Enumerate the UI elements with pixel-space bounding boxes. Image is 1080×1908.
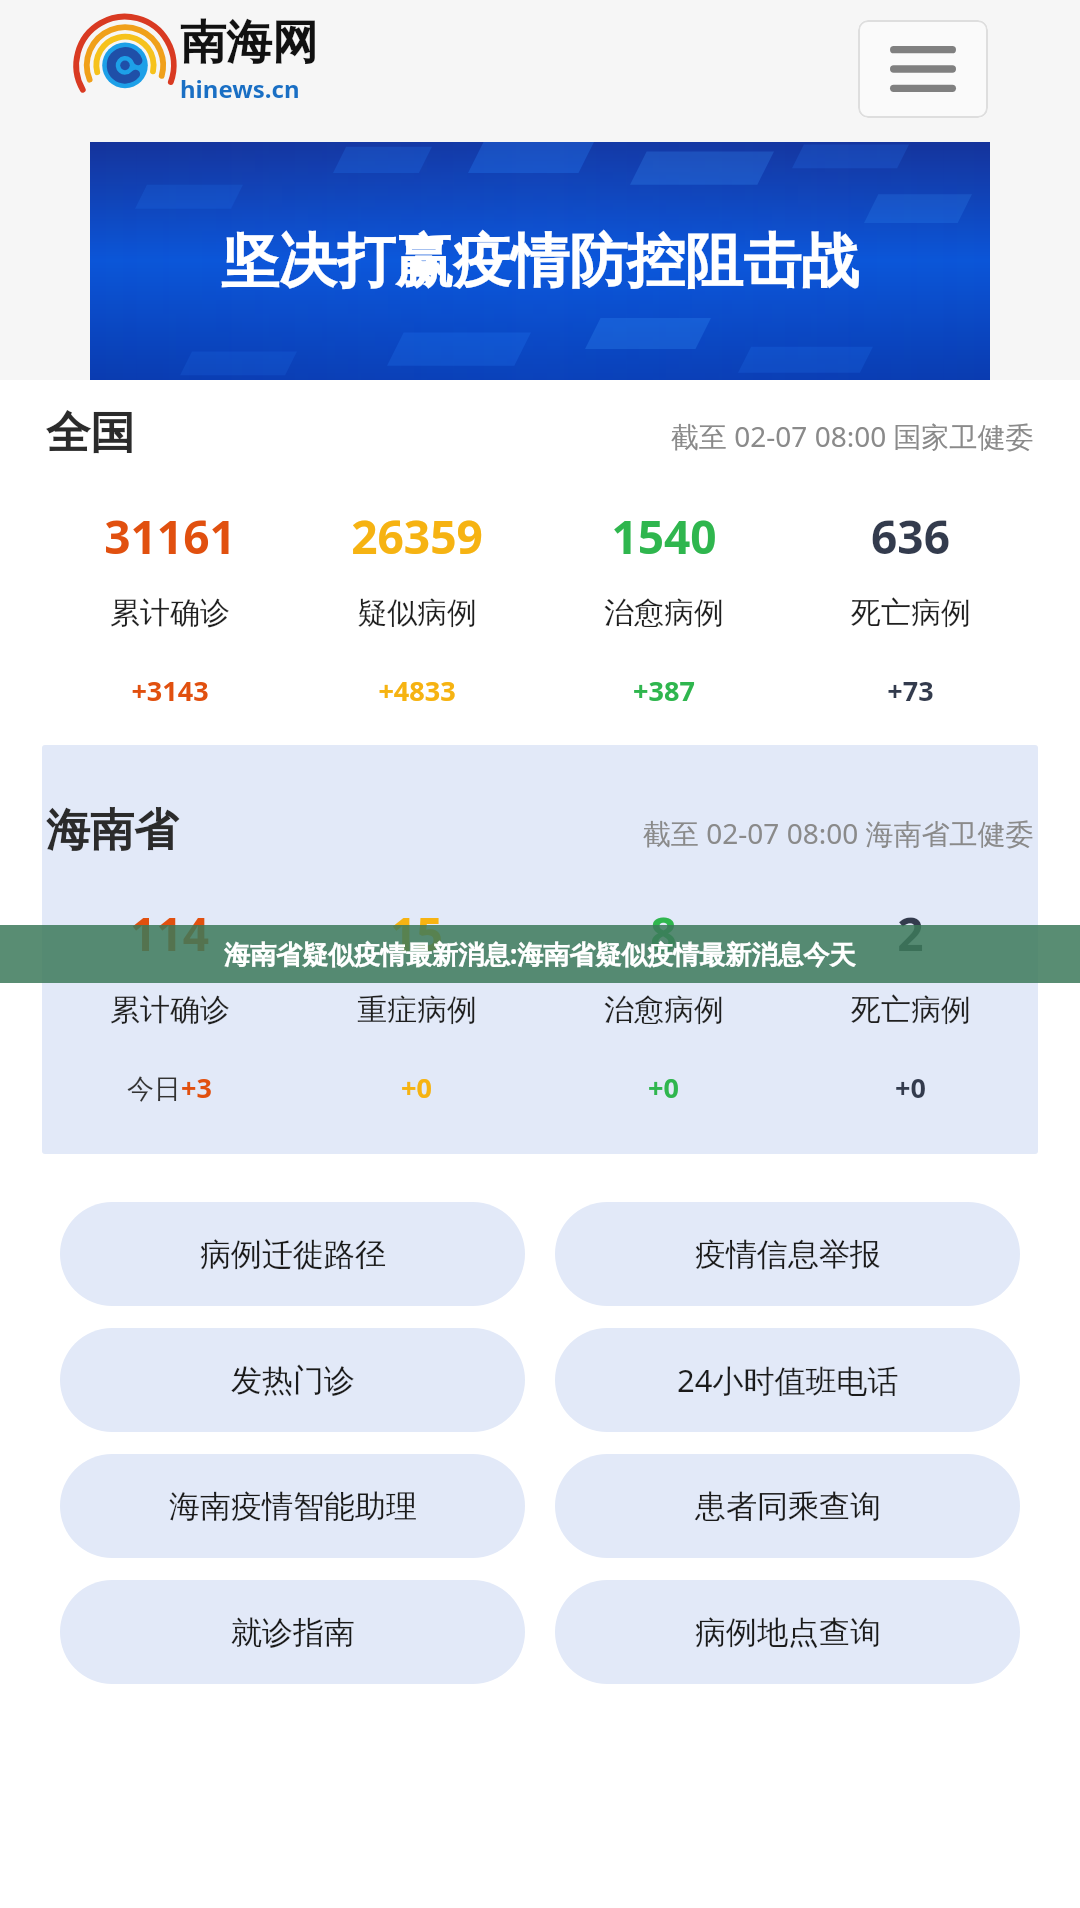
staticText: 病例迁徙路径: [200, 1235, 386, 1274]
staticText: 15: [390, 902, 443, 965]
staticText: +3143: [131, 672, 209, 709]
staticText: 全国: [46, 406, 134, 461]
staticText: 就诊指南: [231, 1613, 355, 1652]
staticText: 死亡病例: [851, 594, 971, 632]
staticText: 重症病例: [357, 991, 477, 1029]
staticText: 636: [871, 505, 950, 568]
staticText: 患者同乘查询: [695, 1487, 881, 1526]
button[interactable]: 就诊指南: [60, 1580, 525, 1684]
staticText: 疫情信息举报: [695, 1235, 881, 1274]
staticText: hinews.cn: [180, 72, 300, 105]
staticText: 海南省: [46, 803, 178, 858]
staticText: 海南省疑似疫情最新消息:海南省疑似疫情最新消息今天: [224, 936, 856, 972]
staticText: 疑似病例: [357, 594, 477, 632]
staticText: +387: [633, 672, 695, 709]
staticText: 累计确诊: [110, 594, 230, 632]
staticText: 坚决打赢疫情防控阻击战: [221, 225, 859, 298]
button[interactable]: 病例地点查询: [555, 1580, 1020, 1684]
button[interactable]: 病例迁徙路径: [60, 1202, 525, 1306]
staticText: 海南疫情智能助理: [169, 1487, 417, 1526]
button[interactable]: 24小时值班电话: [555, 1328, 1020, 1432]
staticText: 截至 02-07 08:00 国家卫健委: [671, 417, 1034, 455]
button[interactable]: 发热门诊: [60, 1328, 525, 1432]
staticText: 114: [130, 902, 209, 965]
staticText: 2: [897, 902, 924, 965]
button[interactable]: 疫情信息举报: [555, 1202, 1020, 1306]
staticText: 南海网: [180, 14, 318, 72]
staticText: 今日+3: [127, 1069, 212, 1106]
staticText: 发热门诊: [231, 1361, 355, 1400]
staticText: +0: [648, 1069, 679, 1106]
staticText: +0: [895, 1069, 926, 1106]
staticText: +0: [401, 1069, 432, 1106]
staticText: 治愈病例: [604, 991, 724, 1029]
staticText: 病例地点查询: [695, 1613, 881, 1652]
staticText: 31161: [104, 505, 236, 568]
staticText: 24小时值班电话: [677, 1359, 899, 1401]
staticText: 8: [650, 902, 677, 965]
staticText: 1540: [611, 505, 717, 568]
staticText: 截至 02-07 08:00 海南省卫健委: [643, 814, 1034, 852]
staticText: 26359: [351, 505, 483, 568]
staticText: +4833: [378, 672, 456, 709]
staticText: 累计确诊: [110, 991, 230, 1029]
button[interactable]: 海南疫情智能助理: [60, 1454, 525, 1558]
button[interactable]: Menu: [858, 20, 988, 118]
button[interactable]: 患者同乘查询: [555, 1454, 1020, 1558]
staticText: 死亡病例: [851, 991, 971, 1029]
staticText: 治愈病例: [604, 594, 724, 632]
staticText: +73: [887, 672, 934, 709]
